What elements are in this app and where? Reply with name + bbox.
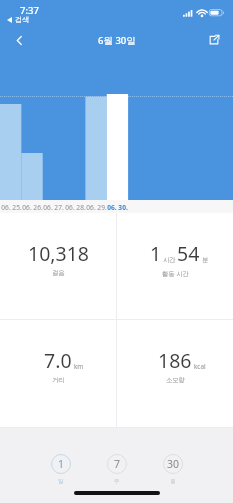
staticText: 06. 29. [86, 203, 107, 212]
staticText: 시간 [163, 256, 176, 264]
staticText: 06. 27. [43, 203, 64, 212]
staticText: 7 [114, 457, 121, 471]
staticText: 검색 [15, 15, 29, 24]
staticText: 10,318 [28, 240, 89, 267]
button[interactable]: 30 [163, 454, 183, 485]
staticText: 1 [58, 457, 65, 471]
button[interactable]: Activity chart [0, 54, 233, 200]
button[interactable]: Share [200, 26, 228, 54]
staticText: 06. 28. [65, 203, 86, 212]
button[interactable]: 10,318 [0, 213, 116, 319]
staticText: 30 [167, 457, 180, 471]
staticText: 54 [177, 240, 200, 267]
staticText: 일 [58, 478, 64, 485]
staticText: 6월 30일 [98, 34, 136, 47]
staticText: 활동 시간 [162, 269, 189, 278]
button[interactable]: 7 [107, 454, 127, 485]
staticText: 걸음 [52, 269, 65, 277]
button[interactable]: 7.0 [0, 320, 116, 427]
button[interactable]: 1 [117, 213, 233, 319]
staticText: 분 [202, 256, 209, 264]
staticText: 06. 25. [1, 203, 22, 212]
staticText: 1 [150, 240, 162, 267]
staticText: km [74, 362, 84, 371]
staticText: 186 [158, 347, 192, 374]
staticText: 7.0 [44, 347, 72, 374]
staticText: 월 [170, 478, 176, 485]
staticText: 소모량 [166, 376, 185, 384]
staticText: 거리 [52, 376, 65, 384]
staticText: 주 [114, 478, 120, 485]
button[interactable]: 186 [117, 320, 233, 427]
staticText: kcal [194, 362, 206, 371]
staticText: 06. 26. [22, 203, 43, 212]
staticText: 7:37 [20, 4, 39, 17]
staticText: 06. 30. [107, 203, 128, 212]
button[interactable]: 1 [51, 454, 71, 485]
button[interactable]: Back [5, 26, 33, 54]
